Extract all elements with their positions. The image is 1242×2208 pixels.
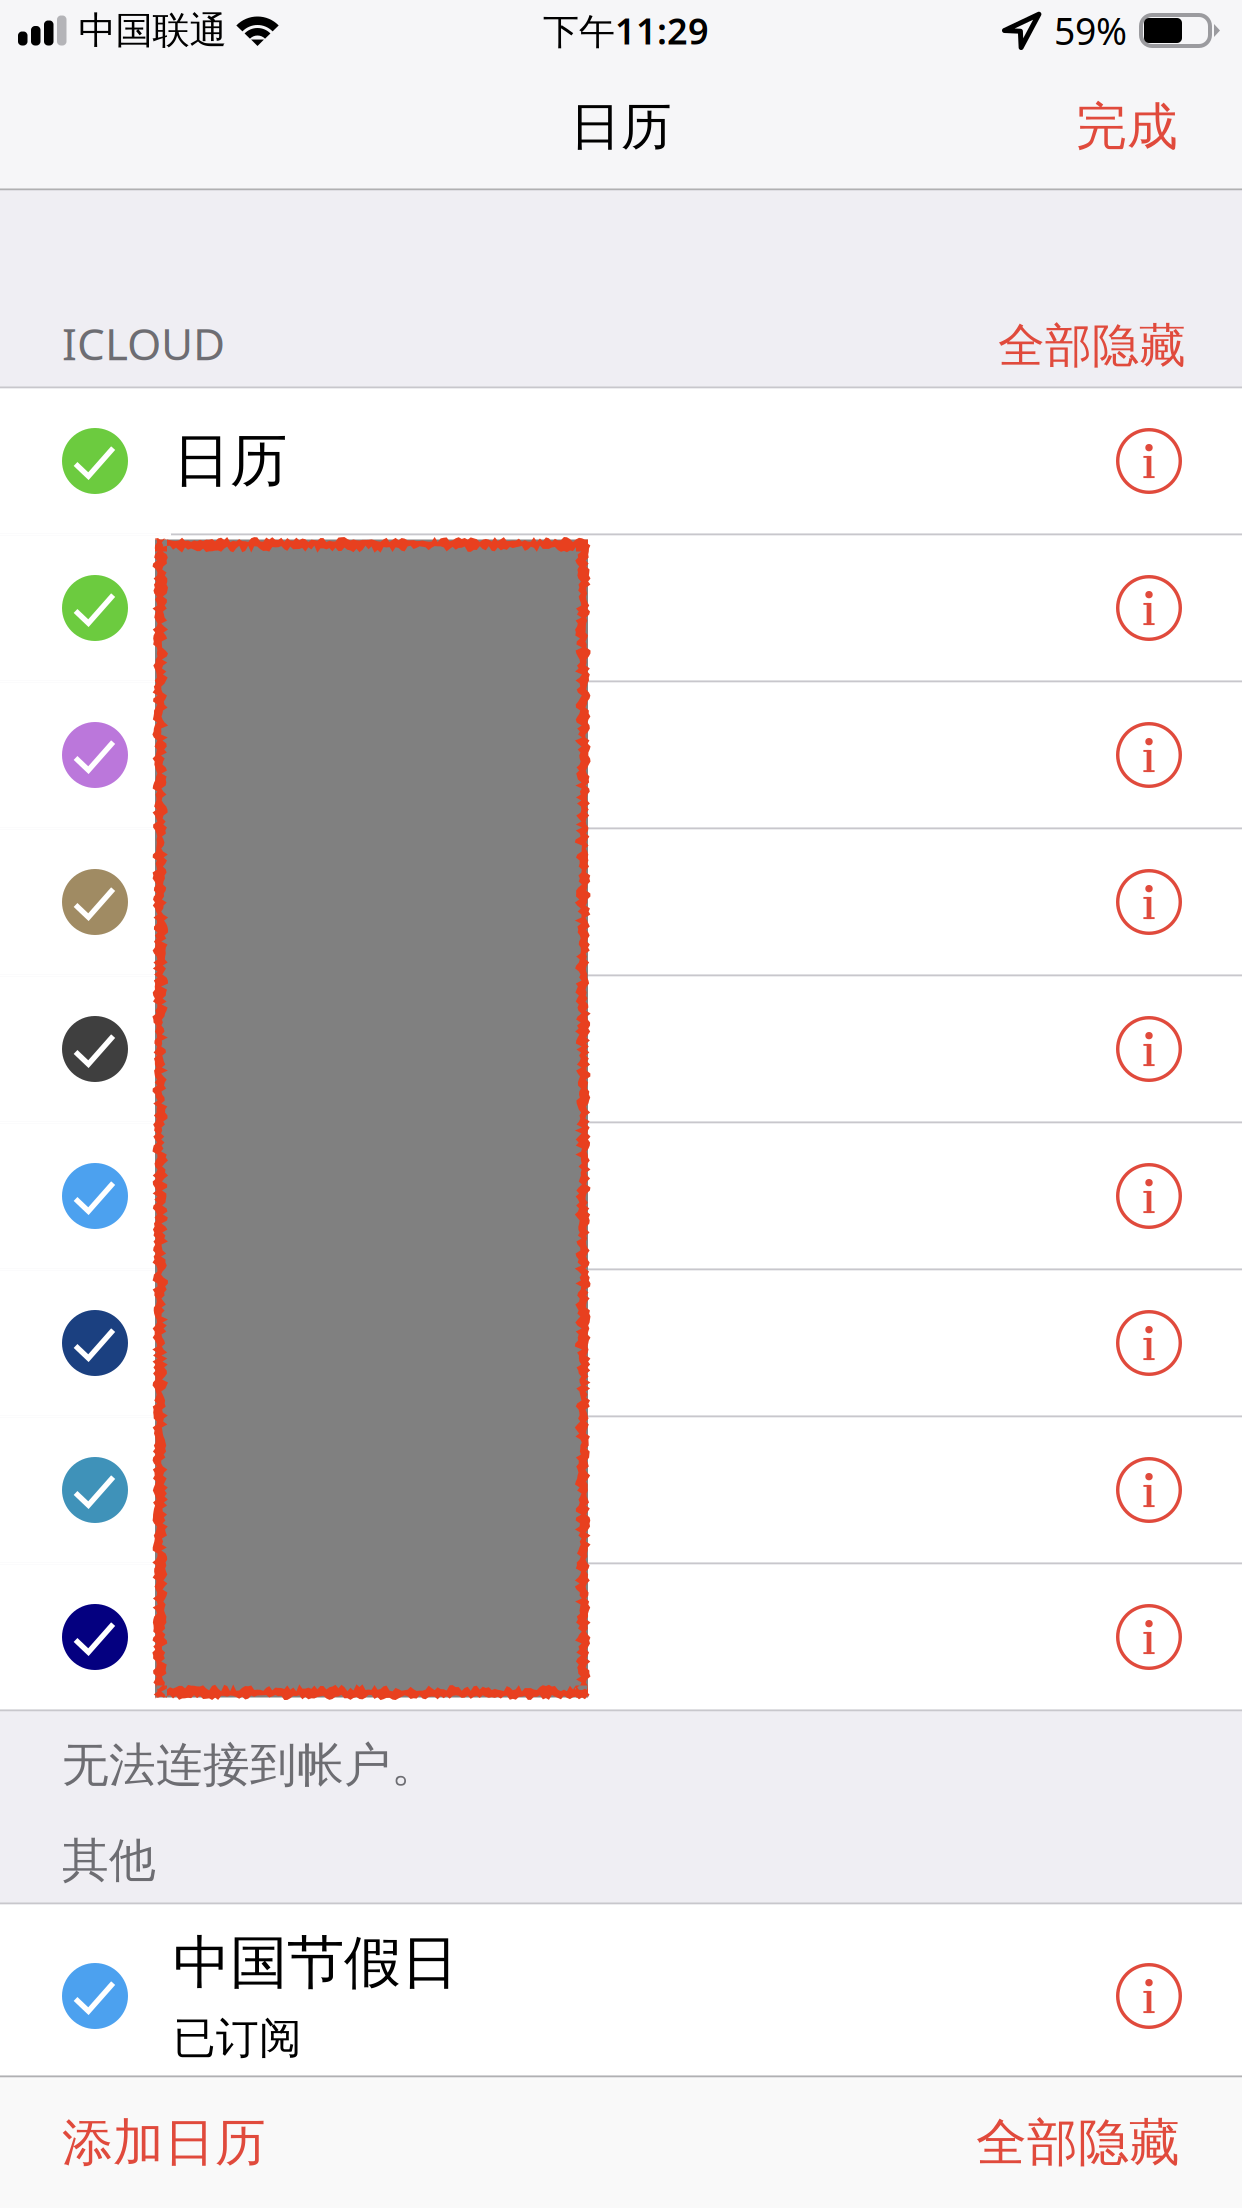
button[interactable]: 添加日历 — [62, 2112, 266, 2174]
button[interactable] — [0, 535, 1242, 680]
button[interactable]: 全部隐藏 — [976, 2112, 1180, 2174]
staticText: 59% — [1054, 6, 1127, 55]
button[interactable]: 日历 — [0, 388, 1242, 533]
button[interactable]: 显示日历详细信息 — [1089, 553, 1209, 663]
button[interactable]: 完成 — [1058, 82, 1196, 172]
button[interactable]: 全部隐藏 — [998, 317, 1186, 386]
button[interactable] — [0, 1564, 1242, 1709]
staticText: 其他 — [62, 1832, 156, 1889]
staticText: 日历 — [570, 96, 672, 158]
staticText: 日历 — [173, 426, 287, 496]
staticText: ICLOUD — [62, 314, 225, 372]
button[interactable] — [0, 1123, 1242, 1268]
button[interactable]: 显示日历详细信息 — [1089, 700, 1209, 810]
staticText: 完成 — [1076, 96, 1178, 158]
staticText: 已订阅 — [173, 2012, 302, 2064]
button[interactable]: 显示日历详细信息 — [1089, 1435, 1209, 1545]
button[interactable]: 显示日历详细信息 — [1089, 994, 1209, 1104]
button[interactable]: 显示日历详细信息 — [1089, 847, 1209, 957]
button[interactable]: 中国节假日 — [0, 1904, 1242, 2075]
staticText: 中国联通 — [78, 8, 226, 53]
button[interactable]: 显示日历详细信息 — [1089, 1582, 1209, 1692]
button[interactable]: 显示日历详细信息 — [1089, 1141, 1209, 1251]
button[interactable]: 显示日历详细信息 — [1089, 1941, 1209, 2051]
button[interactable] — [0, 829, 1242, 974]
staticText: 全部隐藏 — [998, 317, 1186, 374]
staticText: 无法连接到帐户。 — [62, 1736, 438, 1794]
button[interactable] — [0, 1417, 1242, 1562]
staticText: 下午11:29 — [543, 7, 709, 54]
button[interactable] — [0, 1270, 1242, 1415]
button[interactable] — [0, 976, 1242, 1121]
button[interactable]: 显示日历详细信息 — [1089, 406, 1209, 516]
staticText: 全部隐藏 — [976, 2112, 1180, 2174]
button[interactable] — [0, 682, 1242, 827]
button[interactable]: 显示日历详细信息 — [1089, 1288, 1209, 1398]
staticText: 添加日历 — [62, 2112, 266, 2174]
staticText: 中国节假日 — [173, 1928, 458, 1998]
